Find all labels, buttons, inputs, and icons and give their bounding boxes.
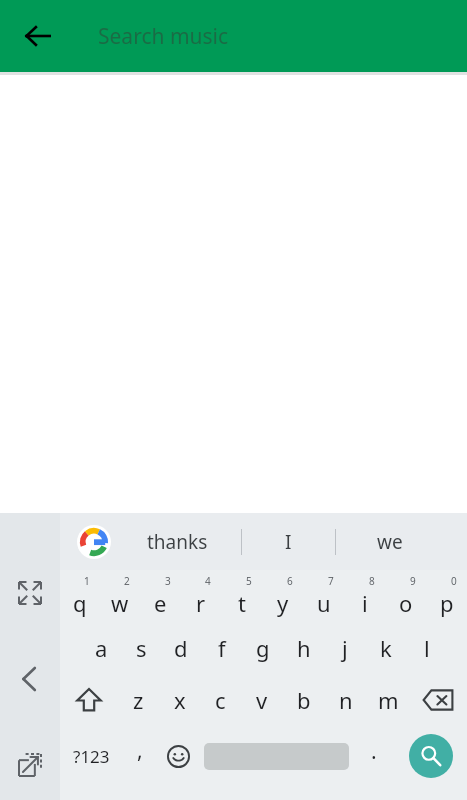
staticText: 1 xyxy=(84,574,90,588)
button[interactable]: Google xyxy=(74,522,114,562)
button[interactable]: g xyxy=(242,622,283,674)
staticText: r xyxy=(196,588,206,618)
button[interactable]: c xyxy=(200,674,241,726)
staticText: m xyxy=(378,685,399,715)
button[interactable]: 6 xyxy=(262,570,303,622)
button[interactable]: . xyxy=(354,726,394,786)
button[interactable]: Space xyxy=(198,726,354,786)
button[interactable]: Floating keyboard xyxy=(8,743,52,787)
staticText: k xyxy=(380,633,392,663)
button[interactable]: n xyxy=(325,674,367,726)
button[interactable]: x xyxy=(159,674,200,726)
staticText: 4 xyxy=(205,574,211,588)
staticText: f xyxy=(218,633,226,663)
staticText: h xyxy=(297,633,311,663)
button[interactable]: 5 xyxy=(221,570,262,622)
button[interactable]: 0 xyxy=(426,570,467,622)
button[interactable]: thanks xyxy=(114,513,241,570)
button[interactable]: h xyxy=(283,622,324,674)
button[interactable]: b xyxy=(283,674,325,726)
button[interactable]: f xyxy=(201,622,242,674)
button[interactable]: we xyxy=(336,513,443,570)
button[interactable]: I xyxy=(242,513,335,570)
button[interactable]: Shift xyxy=(60,674,118,726)
staticText: z xyxy=(133,685,144,715)
staticText: ?123 xyxy=(73,745,110,768)
staticText: b xyxy=(297,685,311,715)
button[interactable]: ?123 xyxy=(60,726,122,786)
staticText: p xyxy=(440,588,454,618)
staticText: thanks xyxy=(147,529,208,555)
staticText: 3 xyxy=(165,574,171,588)
staticText: q xyxy=(73,588,87,618)
staticText: we xyxy=(377,529,403,555)
button[interactable]: s xyxy=(121,622,161,674)
staticText: y xyxy=(277,588,289,618)
button[interactable]: Search xyxy=(394,726,467,786)
button[interactable]: z xyxy=(118,674,159,726)
button[interactable]: 7 xyxy=(303,570,344,622)
button[interactable]: 2 xyxy=(100,570,140,622)
button[interactable]: Resize keyboard xyxy=(8,571,52,615)
staticText: g xyxy=(256,633,270,663)
staticText: v xyxy=(256,685,268,715)
staticText: l xyxy=(424,633,430,663)
button[interactable]: 3 xyxy=(140,570,180,622)
staticText: i xyxy=(362,588,368,618)
staticText: 7 xyxy=(328,574,334,588)
button[interactable]: m xyxy=(367,674,409,726)
button[interactable]: v xyxy=(241,674,283,726)
button[interactable]: Search music xyxy=(98,22,229,51)
staticText: u xyxy=(317,588,331,618)
button[interactable]: l xyxy=(406,622,447,674)
staticText: 0 xyxy=(451,574,457,588)
button[interactable]: d xyxy=(161,622,201,674)
button[interactable]: 8 xyxy=(344,570,385,622)
button[interactable]: 4 xyxy=(180,570,221,622)
staticText: 5 xyxy=(246,574,252,588)
staticText: e xyxy=(154,588,167,618)
staticText: 2 xyxy=(124,574,130,588)
staticText: c xyxy=(215,685,226,715)
staticText: x xyxy=(174,685,186,715)
button[interactable]: , xyxy=(122,726,158,786)
staticText: , xyxy=(137,736,143,765)
button[interactable]: j xyxy=(324,622,365,674)
staticText: w xyxy=(111,588,129,618)
staticText: j xyxy=(342,633,348,663)
staticText: o xyxy=(399,588,413,618)
staticText: a xyxy=(95,633,108,663)
staticText: 6 xyxy=(287,574,293,588)
staticText: t xyxy=(238,588,246,618)
staticText: I xyxy=(285,529,292,555)
staticText: s xyxy=(136,633,147,663)
button[interactable]: Back xyxy=(14,12,62,60)
staticText: n xyxy=(339,685,353,715)
button[interactable]: 1 xyxy=(60,570,100,622)
staticText: d xyxy=(174,633,188,663)
button[interactable]: Emoji xyxy=(158,726,198,786)
button[interactable]: Previous xyxy=(8,657,52,701)
button[interactable]: a xyxy=(81,622,121,674)
button[interactable]: k xyxy=(365,622,406,674)
staticText: 8 xyxy=(369,574,375,588)
staticText: . xyxy=(371,737,377,766)
button[interactable]: Backspace xyxy=(409,674,467,726)
button[interactable]: 9 xyxy=(385,570,426,622)
staticText: 9 xyxy=(410,574,416,588)
